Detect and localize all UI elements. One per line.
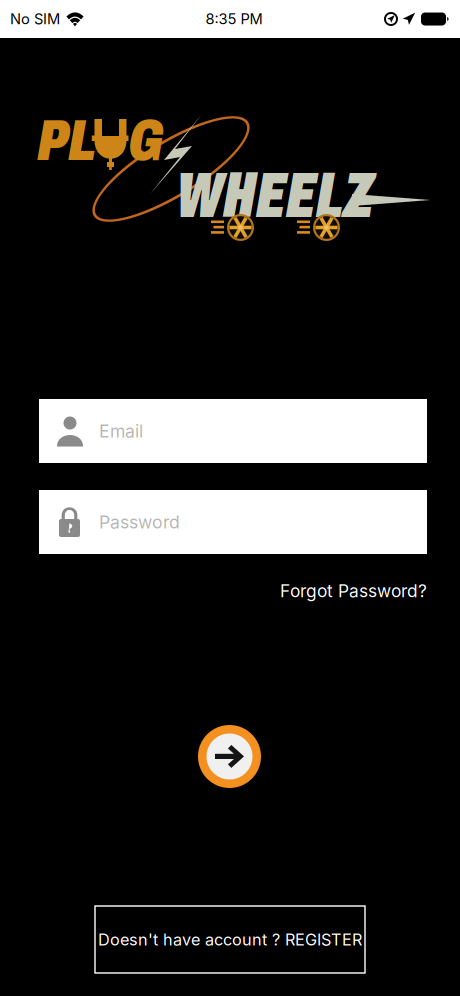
button[interactable]: Email	[39, 399, 427, 463]
staticText: Email	[99, 420, 143, 442]
button[interactable]: Doesn't have account ? REGISTER	[95, 906, 365, 973]
staticText: No SIM	[10, 10, 60, 28]
staticText: Forgot Password?	[280, 580, 427, 601]
staticText: G	[128, 110, 163, 172]
button[interactable]: Password	[39, 490, 427, 554]
staticText: Password	[99, 511, 180, 533]
button[interactable]: Forgot Password?	[277, 577, 427, 605]
staticText: Doesn't have account ? REGISTER	[98, 930, 362, 949]
staticText: PL	[37, 110, 96, 172]
staticText: 8:35 PM	[205, 10, 262, 28]
button[interactable]: Continue	[198, 717, 261, 796]
staticText: WHEELZ	[176, 161, 373, 231]
